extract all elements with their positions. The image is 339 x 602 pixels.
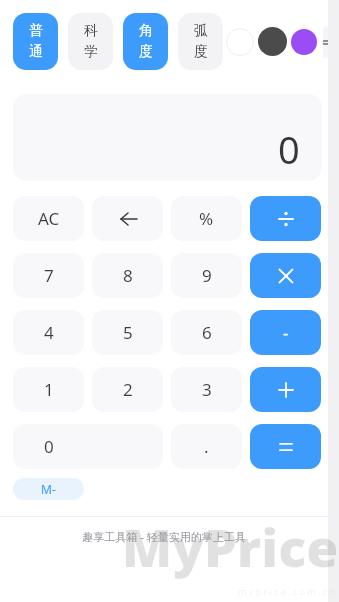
staticText: 度 xyxy=(194,43,208,61)
staticText: 4 xyxy=(44,321,54,344)
staticText: 3 xyxy=(202,378,212,401)
staticText: 普 xyxy=(29,22,43,40)
staticText: 0 xyxy=(278,123,300,175)
button[interactable]: 1 xyxy=(13,367,84,412)
button[interactable]: 科 xyxy=(68,13,113,70)
button[interactable]: 普 xyxy=(13,13,58,70)
button[interactable]: Plus xyxy=(250,367,321,412)
button[interactable]: . xyxy=(171,424,242,469)
button[interactable]: Backspace xyxy=(92,196,163,241)
button[interactable]: % xyxy=(171,196,242,241)
staticText: 2 xyxy=(123,378,133,401)
staticText: 学 xyxy=(84,43,98,61)
button[interactable]: - xyxy=(250,310,321,355)
button[interactable]: 8 xyxy=(92,253,163,298)
button[interactable]: 6 xyxy=(171,310,242,355)
button[interactable]: 0 xyxy=(13,94,322,181)
staticText: 科 xyxy=(84,22,98,40)
staticText: 9 xyxy=(202,264,212,287)
staticText: 5 xyxy=(123,321,133,344)
staticText: 1 xyxy=(44,378,54,401)
button[interactable]: Menu xyxy=(323,26,328,58)
staticText: 弧 xyxy=(194,22,208,40)
button[interactable]: 9 xyxy=(171,253,242,298)
button[interactable]: Purple theme xyxy=(291,29,317,55)
staticText: 趣享工具箱 - 轻量实用的掌上工具 xyxy=(82,529,246,544)
button[interactable]: 4 xyxy=(13,310,84,355)
staticText: MyPrice xyxy=(122,511,339,582)
staticText: % xyxy=(199,207,214,230)
staticText: 7 xyxy=(44,264,54,287)
staticText: - xyxy=(283,321,289,344)
button[interactable]: M- xyxy=(13,478,84,500)
staticText: 0 xyxy=(44,435,54,458)
button[interactable]: 2 xyxy=(92,367,163,412)
staticText: 通 xyxy=(29,43,43,61)
button[interactable]: 弧 xyxy=(178,13,223,70)
button[interactable]: 5 xyxy=(92,310,163,355)
button[interactable]: Divide xyxy=(250,196,321,241)
button[interactable]: 角 xyxy=(123,13,168,70)
staticText: 8 xyxy=(123,264,133,287)
staticText: AC xyxy=(38,207,60,230)
button[interactable]: Equals xyxy=(250,424,321,469)
button[interactable]: 7 xyxy=(13,253,84,298)
staticText: 度 xyxy=(139,43,153,61)
staticText: M- xyxy=(41,481,56,497)
staticText: 6 xyxy=(202,321,212,344)
staticText: m y p r i c e . c o m . c n xyxy=(238,585,336,597)
staticText: . xyxy=(204,435,209,458)
button[interactable]: 3 xyxy=(171,367,242,412)
staticText: 角 xyxy=(139,22,153,40)
button[interactable]: 0 xyxy=(13,424,163,469)
button[interactable]: Multiply xyxy=(250,253,321,298)
button[interactable]: AC xyxy=(13,196,84,241)
button[interactable]: Light theme xyxy=(226,28,254,56)
button[interactable]: Dark theme xyxy=(258,27,287,56)
